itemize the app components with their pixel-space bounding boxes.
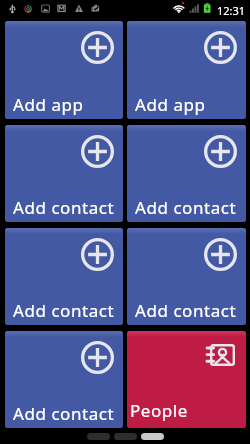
staticText: Add contact xyxy=(135,196,237,219)
button[interactable]: People xyxy=(127,331,246,428)
staticText: Add contact xyxy=(13,299,115,322)
button[interactable]: Back xyxy=(87,433,110,440)
staticText: Add contact xyxy=(13,196,115,219)
staticText: People xyxy=(130,399,188,422)
button[interactable]: Add contact xyxy=(127,125,246,222)
button[interactable]: Add contact xyxy=(5,331,123,428)
staticText: Add contact xyxy=(135,299,237,322)
staticText: Add contact xyxy=(13,402,115,425)
staticText: 12:31 xyxy=(217,3,246,18)
staticText: Add app xyxy=(135,93,206,116)
button[interactable]: Add contact xyxy=(5,228,123,325)
other: People xyxy=(206,344,235,366)
button[interactable]: Add contact xyxy=(5,125,123,222)
button[interactable]: Add app xyxy=(127,21,246,119)
button[interactable]: Add app xyxy=(5,21,123,119)
button[interactable]: Add contact xyxy=(127,228,246,325)
button[interactable]: Recents xyxy=(141,433,164,440)
button[interactable]: Home xyxy=(114,433,137,440)
staticText: Add app xyxy=(13,93,84,116)
